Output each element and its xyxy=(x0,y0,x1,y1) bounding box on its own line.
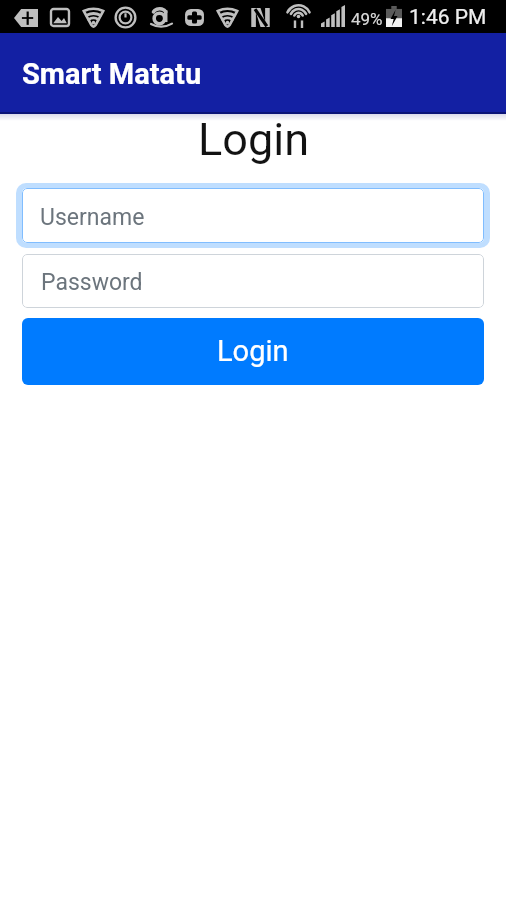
staticText: Login xyxy=(217,334,289,368)
staticText: Smart Matatu xyxy=(22,57,202,91)
staticText: Password xyxy=(41,269,143,296)
staticText: 49% xyxy=(351,9,383,29)
button[interactable]: Password xyxy=(22,254,484,308)
button[interactable] xyxy=(16,183,490,248)
button[interactable]: Login xyxy=(22,318,484,385)
staticText: Login xyxy=(198,113,309,166)
staticText: Username xyxy=(40,204,145,231)
button[interactable]: Username xyxy=(22,188,484,243)
staticText: 1:46 PM xyxy=(409,5,487,30)
